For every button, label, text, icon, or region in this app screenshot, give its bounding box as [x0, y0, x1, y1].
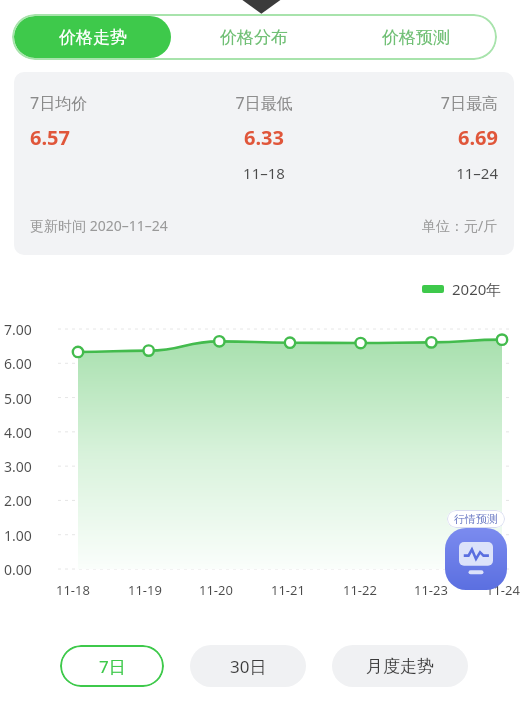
staticText: 7日均价 [30, 92, 88, 114]
staticText: 4.00 [4, 423, 50, 442]
staticText: 2020年 [452, 279, 502, 299]
button[interactable]: 7日 [60, 645, 164, 687]
staticText: 价格分布 [220, 27, 288, 48]
staticText: 11-19 [128, 581, 162, 599]
staticText: 3.00 [4, 457, 50, 476]
staticText: 7日最高 [440, 92, 498, 114]
staticText: 月度走势 [366, 656, 434, 677]
staticText: 单位：元/斤 [422, 216, 498, 235]
staticText: 0.00 [4, 560, 50, 579]
staticText: 6.69 [458, 124, 498, 151]
staticText: 11–18 [243, 163, 285, 183]
staticText: 5.00 [4, 389, 50, 408]
button[interactable]: 行情预测 [445, 510, 507, 590]
staticText: 2.00 [4, 491, 50, 510]
staticText: 6.33 [244, 124, 284, 151]
button[interactable]: 30日 [190, 645, 306, 687]
staticText: 7日 [99, 655, 126, 678]
staticText: 11–24 [456, 163, 498, 183]
staticText: 价格走势 [59, 27, 127, 48]
staticText: 11-18 [56, 581, 90, 599]
button[interactable]: 价格分布 [175, 16, 333, 58]
staticText: 11-24 [486, 581, 520, 599]
staticText: 行情预测 [454, 512, 498, 526]
staticText: 30日 [230, 655, 267, 678]
staticText: 6.57 [30, 124, 70, 151]
button[interactable]: 价格预测 [337, 16, 495, 58]
staticText: 7.00 [4, 320, 50, 339]
staticText: 11-20 [199, 581, 233, 599]
staticText: 1.00 [4, 526, 50, 545]
button[interactable]: 价格走势 [14, 16, 171, 58]
staticText: 6.00 [4, 354, 50, 373]
staticText: 价格预测 [382, 27, 450, 48]
staticText: 11-23 [414, 581, 448, 599]
staticText: 更新时间 2020–11–24 [30, 216, 168, 235]
staticText: 11-21 [271, 581, 305, 599]
staticText: 7日最低 [235, 92, 293, 114]
staticText: 11-22 [343, 581, 377, 599]
button[interactable]: 月度走势 [332, 645, 468, 687]
